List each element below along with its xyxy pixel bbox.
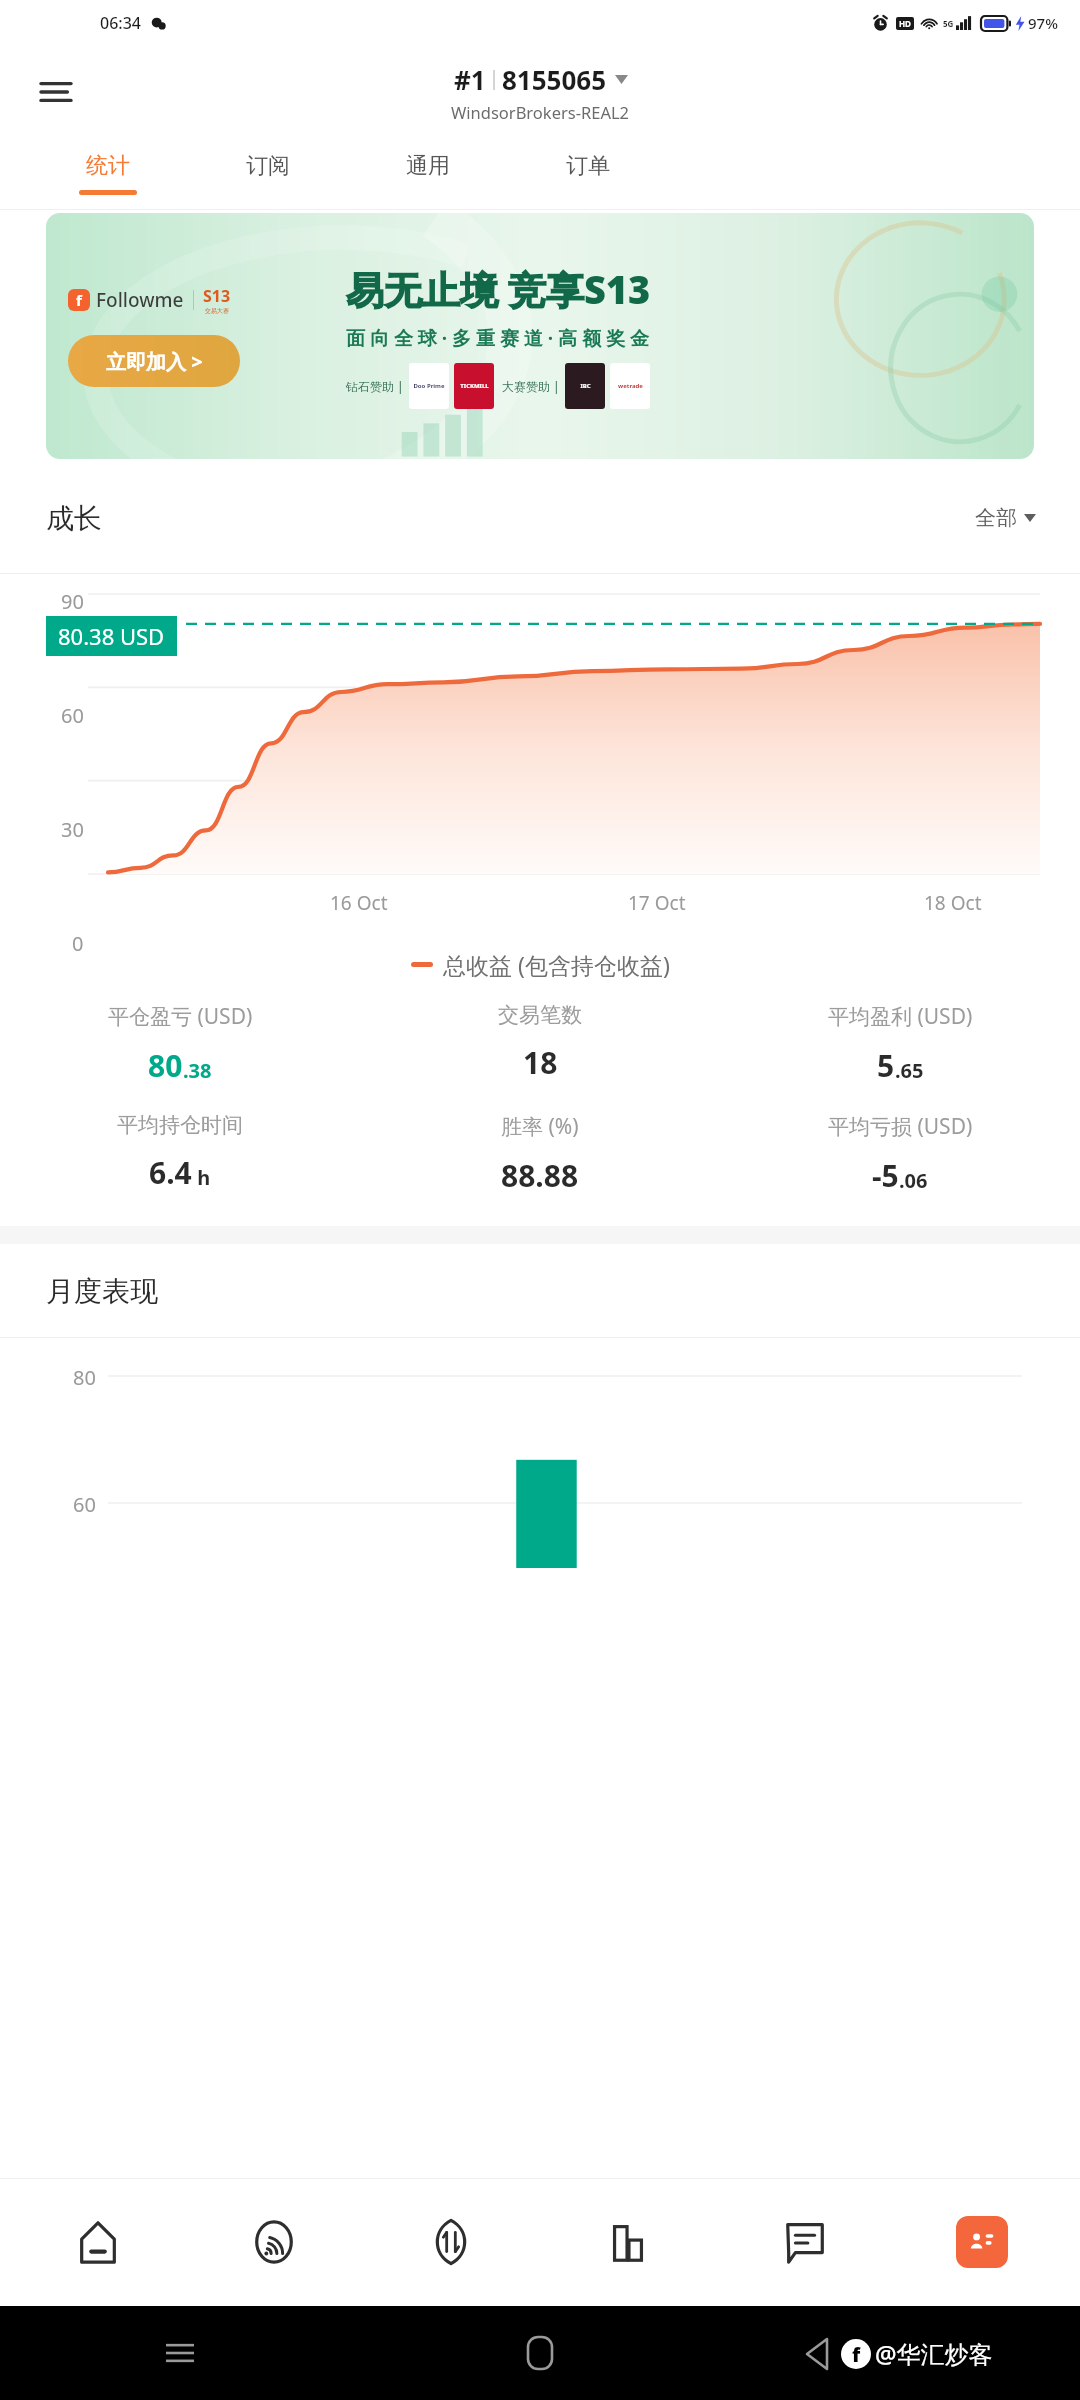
button[interactable]: 立即加入 >	[68, 335, 240, 387]
staticText: 18 Oct	[924, 890, 982, 916]
staticText: 80	[148, 1045, 183, 1086]
staticText: 统计	[86, 152, 130, 180]
staticText: .65	[895, 1057, 924, 1084]
staticText: 平均持仓时间	[117, 1112, 243, 1138]
staticText: 订阅	[246, 152, 290, 180]
staticText: 钻石赞助 |	[346, 378, 404, 394]
button[interactable]: Trade	[362, 2178, 539, 2306]
button[interactable]: 平均亏损 (USD)	[720, 1112, 1080, 1196]
button[interactable]: Signals	[186, 2178, 362, 2306]
button[interactable]: f	[46, 213, 1034, 459]
staticText: wetrade	[618, 382, 643, 390]
staticText: -5	[872, 1155, 899, 1196]
staticText: 通用	[406, 152, 450, 180]
staticText: 订单	[566, 152, 610, 180]
staticText: WindsorBrokers-REAL2	[451, 101, 630, 123]
button[interactable]: 统计	[28, 138, 188, 210]
button[interactable]: 平均盈利 (USD)	[720, 1002, 1080, 1086]
button[interactable]: 胜率 (%)	[360, 1112, 720, 1196]
button[interactable]: 平仓盈亏 (USD)	[0, 1002, 360, 1086]
staticText: 平仓盈亏 (USD)	[108, 1002, 253, 1031]
button[interactable]: 平均持仓时间	[0, 1112, 360, 1193]
button[interactable]: #1	[451, 62, 630, 123]
button[interactable]: 总收益 (包含持仓收益)	[411, 949, 670, 980]
staticText: 胜率 (%)	[501, 1112, 579, 1141]
button[interactable]: Profile	[893, 2178, 1070, 2306]
button[interactable]: 订单	[508, 138, 668, 210]
staticText: 大赛赞助 |	[502, 378, 560, 394]
button[interactable]: 交易笔数	[360, 1002, 720, 1083]
staticText: 交易笔数	[498, 1002, 582, 1028]
staticText: .06	[899, 1167, 928, 1194]
staticText: .38	[183, 1057, 212, 1084]
staticText: Followme	[96, 287, 184, 313]
staticText: 平均盈利 (USD)	[828, 1002, 973, 1031]
staticText: 80.38 USD	[58, 621, 165, 651]
button[interactable]: Messages	[716, 2178, 893, 2306]
staticText: h	[192, 1164, 211, 1191]
staticText: 16 Oct	[330, 890, 388, 916]
staticText: f	[76, 290, 82, 310]
staticText: 总收益 (包含持仓收益)	[443, 949, 670, 980]
staticText: HD	[899, 18, 911, 29]
staticText: 88.88	[501, 1155, 579, 1196]
staticText: IBC	[580, 382, 591, 390]
staticText: 5G	[943, 18, 954, 29]
other: Back	[807, 2339, 827, 2369]
staticText: 60	[61, 702, 84, 729]
button[interactable]: 全部	[975, 505, 1036, 531]
button[interactable]: 通用	[348, 138, 508, 210]
staticText: 面 向 全 球 · 多 重 赛 道 · 高 额 奖 金	[346, 325, 649, 351]
staticText: 平均亏损 (USD)	[828, 1112, 973, 1141]
staticText: Doo Prime	[413, 382, 445, 390]
staticText: 8155065	[502, 62, 607, 97]
staticText: S13	[203, 285, 231, 307]
staticText: 易无止境 竞享S13	[346, 263, 651, 315]
staticText: f	[852, 2341, 861, 2368]
button[interactable]: Statistics	[539, 2178, 716, 2306]
staticText: 90	[61, 588, 84, 615]
staticText: @华汇炒客	[875, 2337, 993, 2370]
staticText: 80	[73, 1364, 96, 1391]
staticText: 30	[61, 816, 84, 843]
staticText: 60	[73, 1491, 96, 1518]
staticText: 97%	[1028, 13, 1058, 33]
staticText: 月度表现	[46, 1274, 158, 1309]
staticText: 全部	[975, 505, 1017, 531]
staticText: 17 Oct	[628, 890, 686, 916]
other: Home	[528, 2337, 552, 2369]
staticText: 0	[72, 930, 84, 957]
staticText: 6.4	[149, 1152, 192, 1193]
staticText: 交易大赛	[205, 307, 229, 315]
staticText: TICKMILL	[460, 382, 489, 390]
staticText: 06:34	[100, 12, 141, 34]
button[interactable]: Home	[10, 2178, 186, 2306]
staticText: 5	[877, 1045, 895, 1086]
staticText: 立即加入 >	[106, 348, 203, 375]
button[interactable]: 订阅	[188, 138, 348, 210]
other: Recents	[166, 2339, 194, 2367]
staticText: #1	[454, 62, 486, 97]
button[interactable]: Menu	[30, 66, 82, 118]
staticText: 成长	[46, 501, 102, 536]
staticText: 18	[523, 1042, 558, 1083]
